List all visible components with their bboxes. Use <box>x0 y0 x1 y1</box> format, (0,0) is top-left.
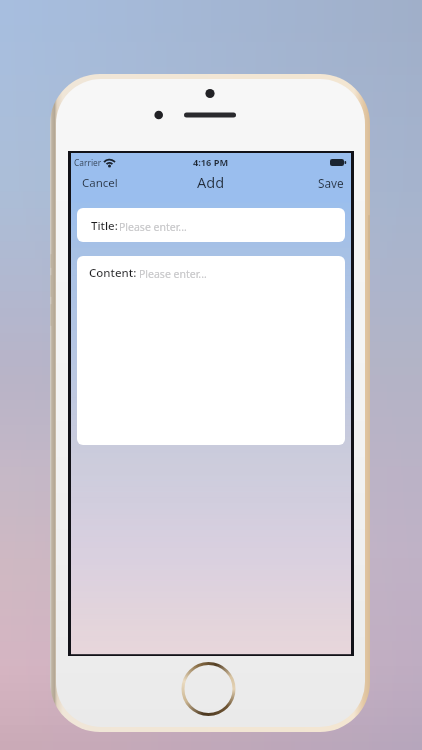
staticText: Add <box>197 172 225 192</box>
staticText: Carrier <box>74 157 102 168</box>
staticText: 4:16 PM <box>193 156 229 169</box>
button[interactable]: Save <box>307 171 351 192</box>
button[interactable]: Content: <box>77 256 345 445</box>
staticText: Title: <box>91 218 118 234</box>
staticText: Content: <box>89 265 137 281</box>
button[interactable]: Title: <box>77 208 345 242</box>
button[interactable]: Cancel <box>71 171 129 192</box>
staticText: Save <box>318 175 344 188</box>
staticText: Cancel <box>82 175 118 188</box>
staticText: Please enter... <box>119 220 187 234</box>
staticText: Please enter... <box>139 267 207 281</box>
